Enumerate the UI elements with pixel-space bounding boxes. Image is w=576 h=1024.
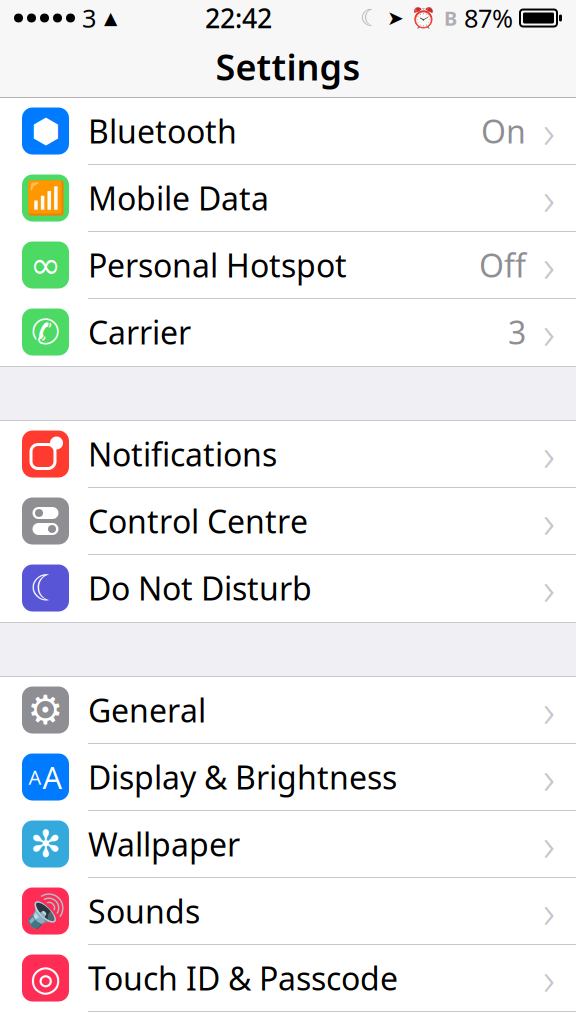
staticText: Do Not Disturb [88, 567, 312, 609]
staticText: Personal Hotspot [88, 244, 347, 286]
staticText: › [543, 814, 555, 874]
staticText: Settings [215, 43, 360, 90]
staticText: › [543, 558, 555, 618]
staticText: Wallpaper [88, 823, 240, 865]
button[interactable]: 🔊 [0, 878, 576, 945]
staticText: 📶 [25, 180, 65, 216]
staticText: ◎ [30, 958, 61, 998]
staticText: A [28, 764, 41, 790]
staticText: ➤ [387, 7, 404, 29]
staticText: Bluetooth [88, 110, 237, 152]
button[interactable]: ✆ [0, 299, 576, 366]
staticText: ⬢ [31, 112, 60, 150]
staticText: Display & Brightness [88, 756, 397, 798]
staticText: ☾ [360, 5, 380, 31]
button[interactable]: ☾ [0, 555, 576, 622]
button[interactable]: Notifications [0, 421, 576, 488]
staticText: General [88, 689, 206, 731]
staticText: Notifications [88, 433, 277, 475]
staticText: › [543, 302, 555, 362]
staticText: › [543, 747, 555, 807]
staticText: ✻ [30, 823, 61, 865]
staticText: Off [479, 244, 526, 286]
button[interactable]: A [0, 744, 576, 811]
button[interactable]: ⬢ [0, 98, 576, 165]
button[interactable]: Control Centre [0, 488, 576, 555]
staticText: On [481, 110, 526, 152]
staticText: 🔊 [25, 893, 65, 929]
staticText: › [543, 235, 555, 295]
staticText: 87% [464, 1, 513, 35]
staticText: › [543, 948, 555, 1008]
staticText: A [42, 757, 62, 797]
staticText: › [543, 491, 555, 551]
button[interactable]: ∞ [0, 232, 576, 299]
staticText: 3 [508, 311, 526, 353]
staticText: › [543, 168, 555, 228]
staticText: ☾ [29, 568, 61, 608]
staticText: 22:42 [205, 0, 272, 36]
staticText: Mobile Data [88, 177, 269, 219]
staticText: Touch ID & Passcode [88, 957, 398, 999]
button[interactable]: ✻ [0, 811, 576, 878]
staticText: › [543, 881, 555, 941]
staticText: ∞ [30, 244, 61, 286]
staticText: Control Centre [88, 500, 308, 542]
button[interactable]: ◎ [0, 945, 576, 1012]
staticText: Sounds [88, 890, 200, 932]
staticText: 3 [82, 1, 96, 35]
staticText: ⏰ [411, 7, 436, 29]
staticText: Carrier [88, 311, 191, 353]
staticText: B [444, 5, 457, 31]
staticText: › [543, 101, 555, 161]
button[interactable]: 📶 [0, 165, 576, 232]
staticText: ✆ [31, 312, 60, 352]
staticText: › [543, 680, 555, 740]
staticText: ▲ [104, 8, 117, 28]
button[interactable]: ⚙ [0, 677, 576, 744]
staticText: ⚙ [27, 687, 63, 733]
staticText: › [543, 424, 555, 484]
